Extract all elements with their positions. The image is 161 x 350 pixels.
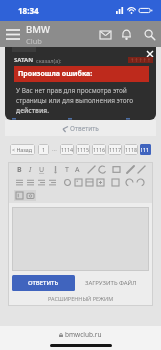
button[interactable]: Quote	[111, 164, 122, 175]
staticText: SATAN	[14, 56, 34, 64]
button[interactable]: Table	[84, 177, 95, 188]
staticText: 1	[42, 146, 46, 153]
staticText: сказал(а):	[36, 57, 62, 64]
button[interactable]: Menu	[0, 21, 26, 47]
button[interactable]: Align	[36, 177, 47, 188]
staticText: РАСШИРЕННЫЙ РЕЖИМ	[48, 295, 114, 302]
button[interactable]: РАСШИРЕННЫЙ РЕЖИМ	[8, 295, 153, 302]
button[interactable]: B	[14, 164, 25, 175]
button[interactable]: Messages	[95, 24, 116, 45]
button[interactable]: Camera	[25, 190, 36, 201]
button[interactable]: Инструменты	[12, 118, 55, 120]
button[interactable]	[12, 207, 149, 271]
staticText: Club	[26, 36, 42, 46]
button[interactable]: Unlink	[97, 164, 108, 175]
button[interactable]: Search	[137, 22, 161, 46]
button[interactable]: 1114	[60, 144, 74, 155]
button[interactable]: Marker	[125, 164, 136, 175]
button[interactable]: Цитата	[126, 118, 151, 120]
staticText: T	[65, 165, 69, 175]
button[interactable]: 1118	[124, 144, 138, 155]
staticText: ЗАГРУЗИТЬ ФАЙЛ	[85, 279, 137, 287]
button[interactable]: Link	[86, 164, 97, 175]
button[interactable]: 1119	[140, 144, 151, 155]
staticText: страницы или для выполнения этого	[16, 96, 134, 105]
staticText: 18:34	[18, 5, 39, 16]
button[interactable]: Align	[47, 177, 58, 188]
button[interactable]: 1115	[76, 144, 90, 155]
button[interactable]: Ответить	[5, 120, 156, 136]
button[interactable]: Мне нравится	[68, 118, 112, 120]
staticText: Ответить	[70, 124, 99, 133]
button[interactable]: Insert	[95, 177, 106, 188]
staticText: U	[39, 165, 45, 175]
button[interactable]: Color	[50, 164, 61, 175]
staticText: Произошла ошибка:	[18, 69, 93, 79]
staticText: 1118	[125, 146, 138, 153]
button[interactable]: Code	[110, 177, 121, 188]
button[interactable]: Eraser	[136, 164, 147, 175]
staticText: 1114	[61, 146, 74, 153]
button[interactable]: Redo	[135, 177, 146, 188]
staticText: I	[29, 165, 32, 175]
button[interactable]: 1	[38, 144, 49, 155]
staticText: ОТВЕТИТЬ	[28, 279, 59, 287]
button[interactable]: I	[25, 164, 36, 175]
button[interactable]: ЗАГРУЗИТЬ ФАЙЛ	[85, 275, 137, 291]
button[interactable]: A	[72, 164, 83, 175]
button[interactable]: Image	[73, 177, 84, 188]
staticText: ↑↑↑↑↑	[130, 57, 151, 63]
button[interactable]: Undo	[124, 177, 135, 188]
staticText: 1115	[77, 146, 90, 153]
button[interactable]: Notifications	[116, 24, 137, 45]
staticText: ···	[52, 146, 57, 154]
button[interactable]: T	[61, 164, 72, 175]
staticText: bmwclub.ru	[65, 330, 102, 339]
staticText: < Назад	[12, 146, 33, 153]
staticText: B	[17, 165, 22, 175]
staticText: A	[75, 165, 80, 175]
button[interactable]: Align	[14, 177, 25, 188]
staticText: 1117	[109, 146, 122, 153]
button[interactable]: 1117	[108, 144, 122, 155]
button[interactable]: Source	[14, 190, 25, 201]
staticText: BMW	[26, 23, 50, 36]
button[interactable]: Align	[25, 177, 36, 188]
button[interactable]: ОТВЕТИТЬ	[12, 275, 75, 291]
button[interactable]: Close	[143, 47, 156, 60]
staticText: У Вас нет прав для просмотра этой	[16, 86, 127, 95]
button[interactable]: 1116	[92, 144, 106, 155]
staticText: 1119	[140, 146, 151, 153]
button[interactable]: U	[36, 164, 47, 175]
button[interactable]: Smiley	[62, 177, 73, 188]
staticText: 1116	[93, 146, 106, 153]
staticText: действия.	[16, 106, 50, 115]
button[interactable]: < Назад	[10, 144, 35, 155]
